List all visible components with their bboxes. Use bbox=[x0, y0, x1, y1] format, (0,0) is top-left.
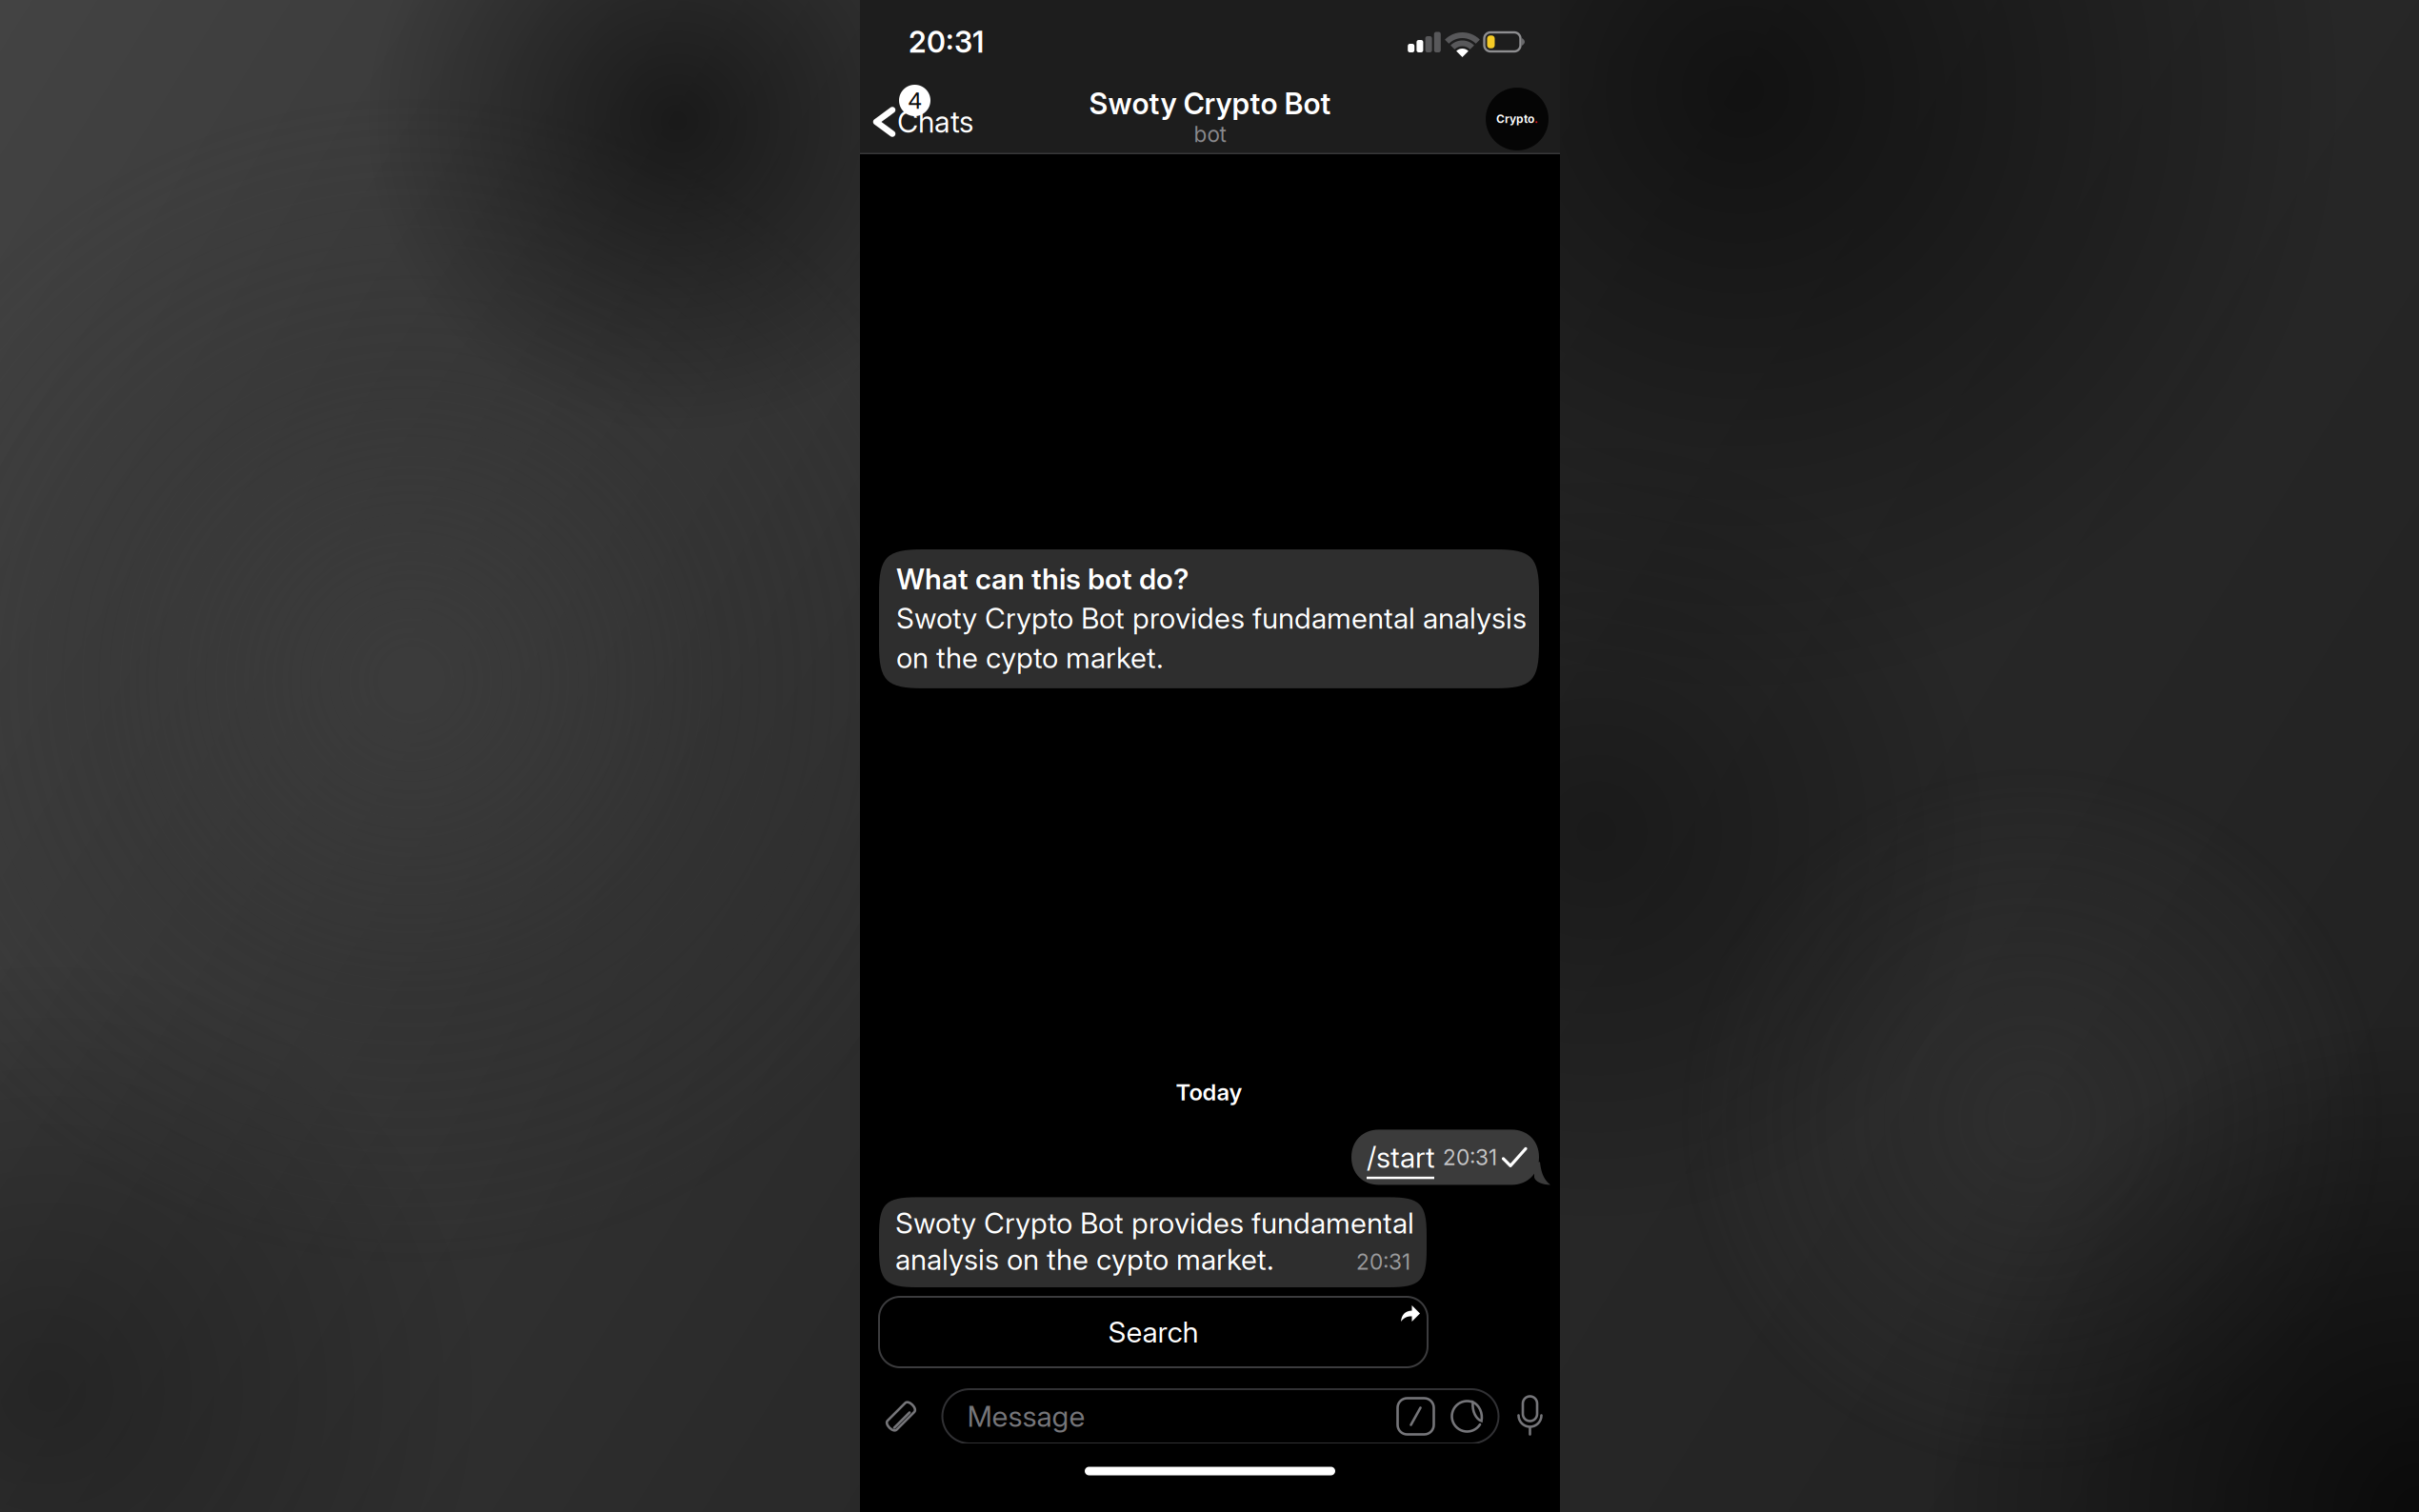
staticText: Crypto bbox=[1496, 112, 1534, 126]
button[interactable]: Chats bbox=[860, 63, 973, 139]
button[interactable]: Stickers bbox=[1450, 1398, 1486, 1434]
button[interactable]: Record voice message bbox=[1506, 1389, 1554, 1443]
staticText: analysis on the cypto market. bbox=[895, 1242, 1274, 1277]
staticText: on the cypto market. bbox=[896, 640, 1164, 675]
staticText: Chats bbox=[897, 104, 973, 139]
button[interactable]: Commands bbox=[1398, 1398, 1434, 1434]
staticText: Search bbox=[1108, 1315, 1199, 1349]
staticText: 20:31 bbox=[1443, 1144, 1497, 1170]
staticText: 4 bbox=[908, 87, 922, 114]
staticText: Swoty Crypto Bot provides fundamental an… bbox=[896, 601, 1527, 636]
staticText: bot bbox=[1194, 121, 1226, 147]
staticText: . bbox=[1534, 112, 1538, 126]
staticText: /start bbox=[1367, 1140, 1435, 1175]
staticText: 20:31 bbox=[909, 24, 984, 60]
staticText: What can this bot do? bbox=[896, 562, 1189, 596]
staticText: Swoty Crypto Bot provides fundamental bbox=[895, 1206, 1414, 1240]
staticText: Today bbox=[1176, 1078, 1242, 1106]
staticText: Message bbox=[967, 1399, 1085, 1434]
button[interactable]: Search bbox=[879, 1297, 1428, 1367]
staticText: Swoty Crypto Bot bbox=[1089, 86, 1331, 121]
staticText: 20:31 bbox=[1356, 1249, 1410, 1275]
button[interactable]: Attach file bbox=[872, 1389, 925, 1443]
button[interactable]: Bot profile bbox=[1486, 63, 1560, 150]
